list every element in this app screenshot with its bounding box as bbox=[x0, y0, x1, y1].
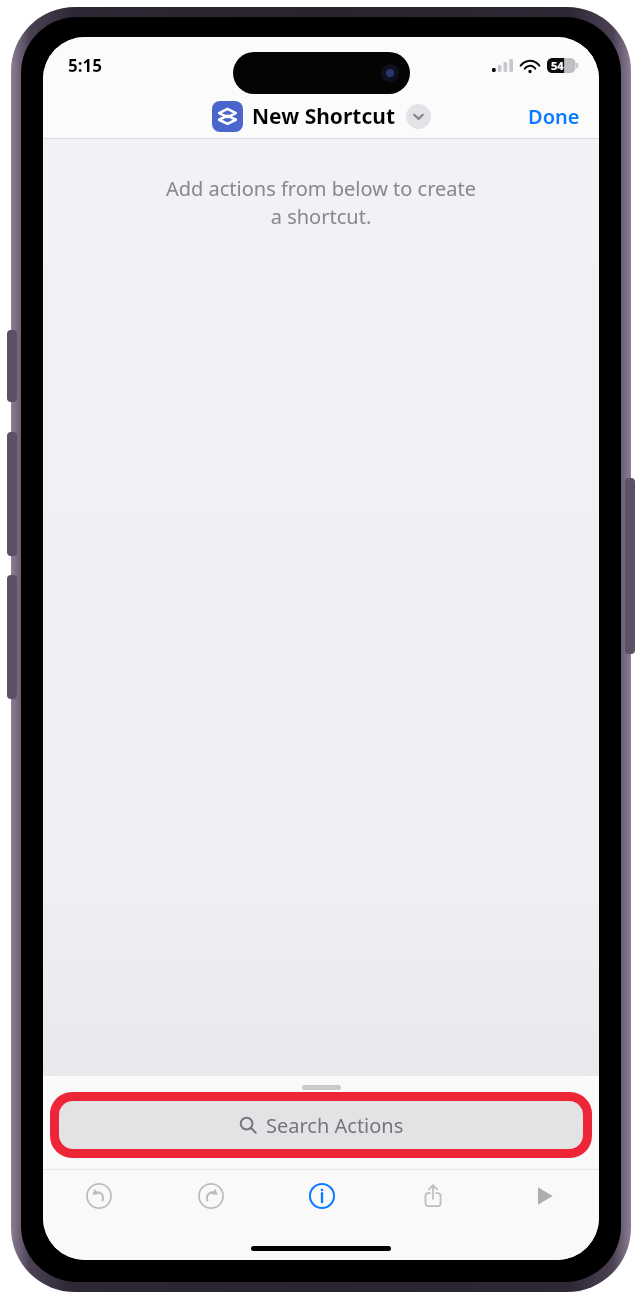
staticText: Done bbox=[528, 103, 580, 130]
button[interactable]: Search Actions bbox=[50, 1092, 592, 1158]
button[interactable]: Share bbox=[377, 1170, 488, 1222]
button[interactable]: Shortcut icon bbox=[212, 101, 243, 132]
staticText: Search Actions bbox=[266, 1112, 404, 1139]
button[interactable]: Shortcut options bbox=[406, 104, 431, 129]
button[interactable]: Redo bbox=[155, 1170, 266, 1222]
staticText: 5:15 bbox=[68, 54, 102, 77]
staticText: Add actions from below to create a short… bbox=[43, 175, 599, 230]
staticText: 54 bbox=[551, 58, 564, 73]
staticText: New Shortcut bbox=[252, 102, 396, 131]
button[interactable]: Done bbox=[509, 94, 599, 139]
button[interactable]: Undo bbox=[43, 1170, 155, 1222]
button[interactable]: Details bbox=[266, 1170, 377, 1222]
button[interactable]: Run bbox=[488, 1170, 599, 1222]
